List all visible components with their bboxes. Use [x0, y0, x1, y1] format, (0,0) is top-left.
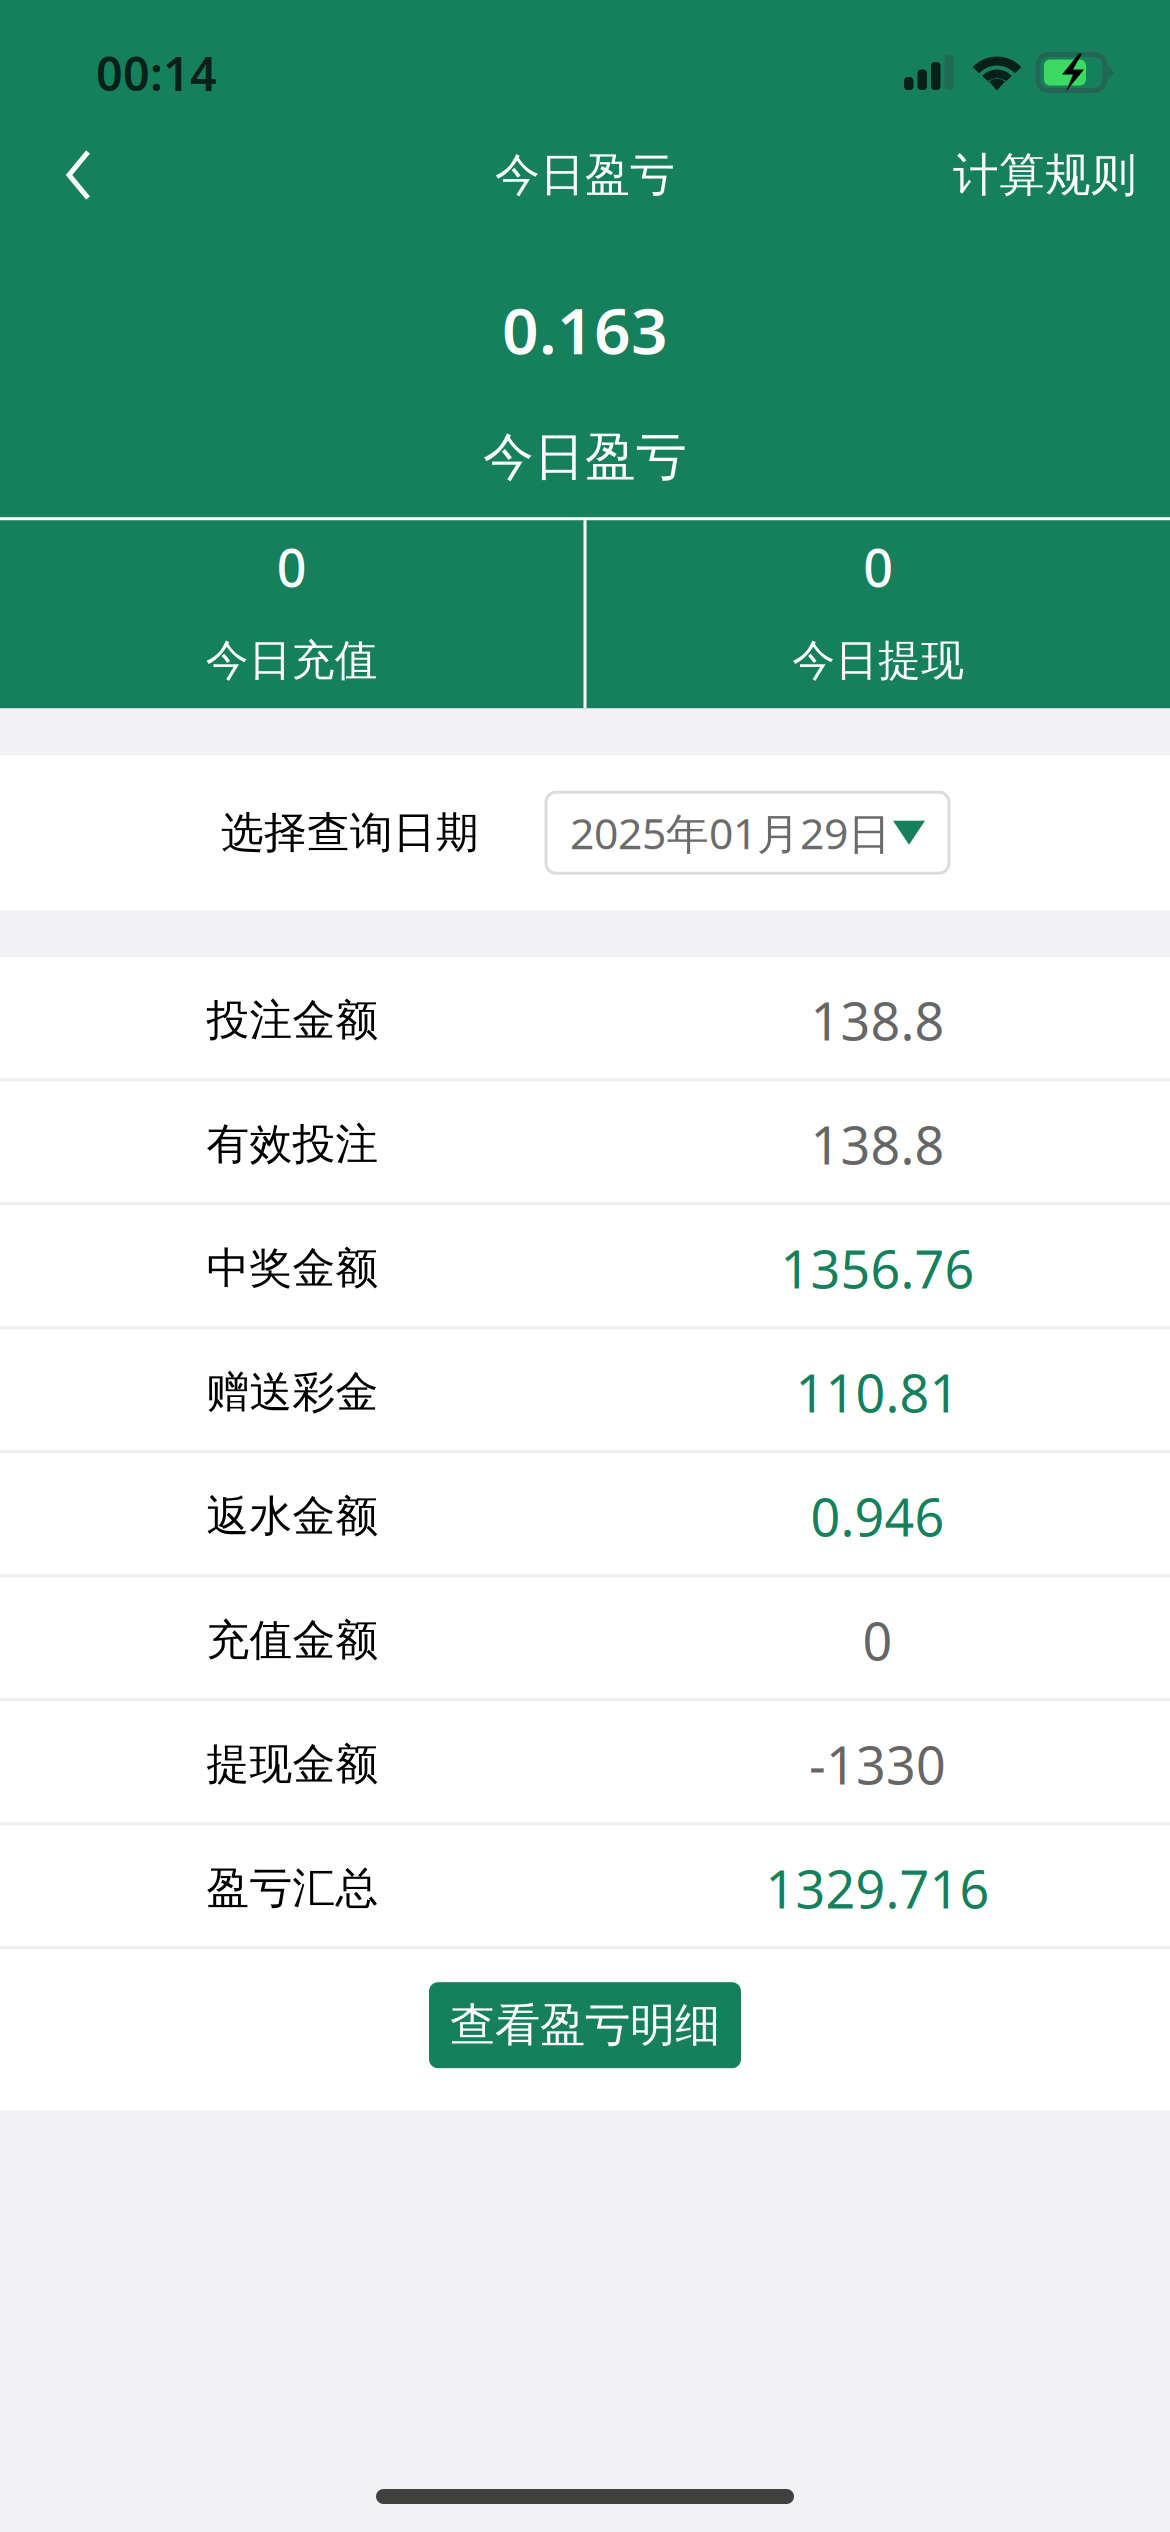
- staticText: -1330: [809, 1730, 946, 1799]
- staticText: 1356.76: [780, 1234, 974, 1303]
- staticText: 中奖金额: [206, 1242, 378, 1294]
- staticText: 计算规则: [953, 146, 1137, 204]
- staticText: 0.946: [810, 1482, 944, 1551]
- staticText: 有效投注: [206, 1118, 378, 1170]
- staticText: 138.8: [810, 986, 944, 1055]
- staticText: 今日盈亏: [483, 426, 687, 488]
- staticText: 0: [862, 1606, 892, 1675]
- staticText: 查看盈亏明细: [450, 1997, 720, 2053]
- staticText: 1329.716: [765, 1854, 989, 1923]
- staticText: 投注金额: [206, 994, 378, 1046]
- staticText: 今日提现: [792, 634, 964, 687]
- staticText: 0: [277, 532, 307, 601]
- button[interactable]: 返回: [0, 130, 137, 220]
- staticText: 0.163: [502, 287, 668, 372]
- staticText: 返水金额: [206, 1490, 378, 1542]
- staticText: 赠送彩金: [206, 1366, 378, 1418]
- staticText: 0: [863, 532, 893, 601]
- staticText: 今日充值: [206, 634, 378, 687]
- staticText: 138.8: [810, 1110, 944, 1179]
- staticText: 110.81: [795, 1358, 959, 1427]
- staticText: 00:14: [96, 42, 217, 104]
- staticText: 选择查询日期: [221, 806, 479, 859]
- button[interactable]: 2025年01月29日: [546, 792, 949, 873]
- button[interactable]: 查看盈亏明细: [429, 1982, 741, 2068]
- button[interactable]: 计算规则: [919, 130, 1170, 220]
- staticText: 盈亏汇总: [206, 1862, 378, 1914]
- staticText: 充值金额: [206, 1614, 378, 1666]
- staticText: 2025年01月29日: [570, 804, 891, 861]
- staticText: 提现金额: [206, 1738, 378, 1790]
- staticText: 今日盈亏: [495, 147, 675, 203]
